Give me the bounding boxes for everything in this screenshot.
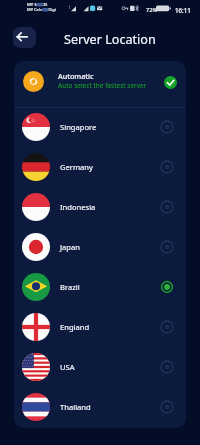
button[interactable]: USA	[14, 347, 186, 387]
button[interactable]: Germany	[14, 147, 186, 187]
button[interactable]: Thailand	[14, 387, 186, 427]
staticText: Brazil	[60, 282, 80, 292]
staticText: USA	[60, 362, 75, 372]
button[interactable]: Back	[13, 27, 36, 48]
button[interactable]: Singapore	[14, 107, 186, 147]
staticText: Auto select the fastest server	[58, 81, 147, 90]
button[interactable]: England	[14, 307, 186, 347]
button[interactable]: Brazil	[14, 267, 186, 307]
staticText: 72%	[146, 6, 158, 14]
button[interactable]: Indonesia	[14, 187, 186, 227]
staticText: Server Location	[64, 31, 156, 48]
staticText: Indonesia	[60, 202, 96, 212]
button[interactable]: Japan	[14, 227, 186, 267]
staticText: Singapore	[60, 122, 97, 132]
button[interactable]: Automatic	[14, 61, 186, 107]
staticText: 16:11	[175, 6, 191, 14]
staticText: Japan	[60, 242, 80, 252]
staticText: England	[60, 322, 90, 332]
staticText: Thailand	[60, 402, 91, 412]
staticText: Automatic	[58, 71, 94, 81]
staticText: MY MAXIS	[27, 2, 48, 8]
staticText: Germany	[60, 162, 93, 172]
staticText: MY CelcomDigi	[27, 7, 56, 12]
